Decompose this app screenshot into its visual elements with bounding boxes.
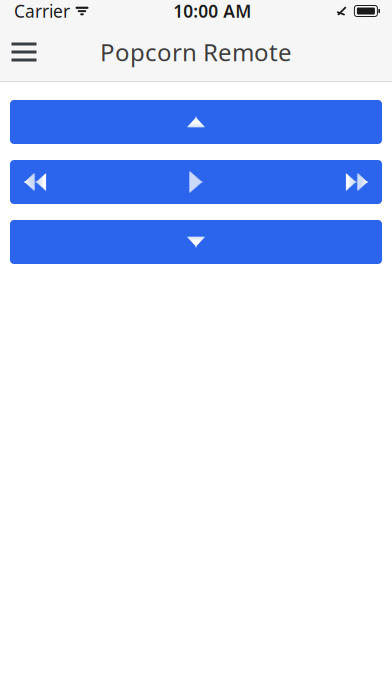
staticText: Carrier	[14, 0, 70, 22]
button[interactable]: Up	[10, 100, 382, 144]
button[interactable]: Playback controls	[10, 160, 382, 204]
staticText: Popcorn Remote	[100, 36, 292, 68]
button[interactable]: Down	[10, 220, 382, 264]
staticText: 10:00 AM	[173, 0, 251, 22]
button[interactable]: Menu	[2, 30, 46, 74]
